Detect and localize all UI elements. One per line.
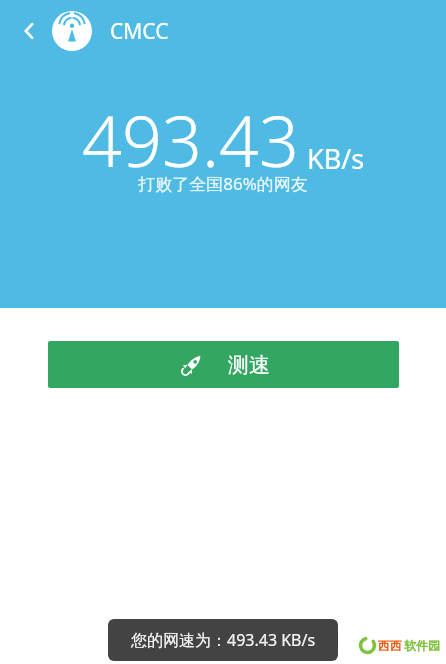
button[interactable]: Back xyxy=(10,12,48,50)
staticText: 测速 xyxy=(228,352,270,378)
staticText: KB/s xyxy=(307,140,365,177)
staticText: 打败了全国86%的网友 xyxy=(138,172,308,195)
staticText: CMCC xyxy=(110,17,169,46)
staticText: 您的网速为：493.43 KB/s xyxy=(131,629,316,651)
staticText: 西西 xyxy=(378,638,402,653)
staticText: 软件园 xyxy=(404,638,440,653)
staticText: 493.43 xyxy=(82,92,299,187)
button[interactable]: 测速 xyxy=(48,341,399,388)
